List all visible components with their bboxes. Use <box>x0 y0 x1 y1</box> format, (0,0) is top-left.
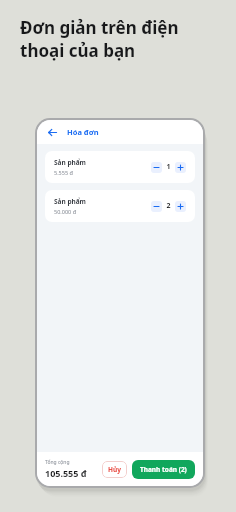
staticText: 5.555 đ <box>54 169 73 176</box>
button[interactable]: Decrease <box>151 201 162 212</box>
staticText: Thanh toán (2) <box>140 465 187 474</box>
staticText: Sản phẩm <box>54 197 86 206</box>
staticText: thoại của bạn <box>20 39 136 62</box>
button[interactable]: Increase <box>175 162 186 173</box>
button[interactable]: Decrease <box>151 162 162 173</box>
staticText: Đơn giản trên điện <box>20 16 179 39</box>
staticText: 2 <box>166 201 171 211</box>
staticText: Tổng cộng <box>45 459 70 466</box>
staticText: 105.555 đ <box>45 467 87 479</box>
staticText: Hủy <box>108 465 121 474</box>
staticText: Sản phẩm <box>54 158 86 167</box>
button[interactable]: Thanh toán (2) <box>132 460 195 479</box>
button[interactable]: Increase <box>175 201 186 212</box>
staticText: Hóa đơn <box>67 127 99 137</box>
button[interactable]: Sản phẩm <box>45 151 195 183</box>
staticText: 50.000 đ <box>54 208 77 215</box>
button[interactable]: Back <box>45 125 59 139</box>
staticText: 1 <box>166 162 171 172</box>
button[interactable]: Sản phẩm <box>45 190 195 222</box>
button[interactable]: Hủy <box>102 461 127 478</box>
